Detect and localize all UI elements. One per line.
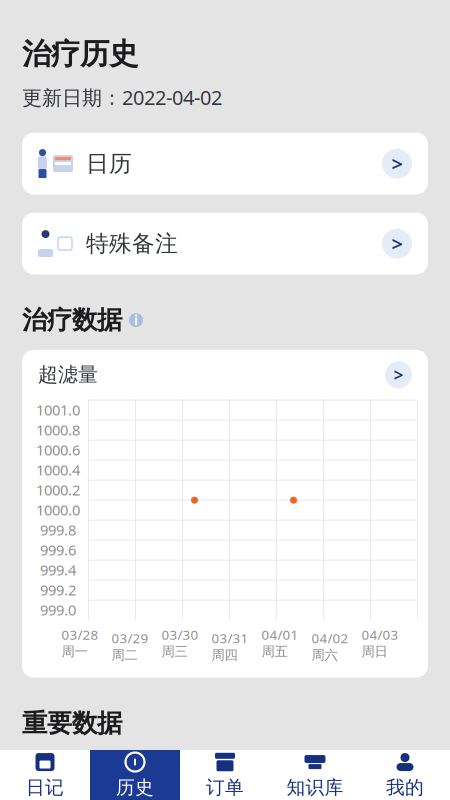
staticText: 超滤量 bbox=[38, 362, 98, 387]
staticText: > bbox=[393, 772, 403, 795]
staticText: 03/29 周二 bbox=[111, 629, 148, 663]
staticText: 999.6 bbox=[40, 540, 76, 559]
button[interactable]: 日历 bbox=[22, 133, 428, 195]
button[interactable]: 订单 bbox=[180, 750, 270, 800]
staticText: > bbox=[391, 150, 402, 177]
staticText: 我的 bbox=[386, 776, 424, 799]
staticText: 特殊备注 bbox=[86, 230, 178, 257]
button[interactable]: 我的 bbox=[360, 750, 450, 800]
button[interactable]: 知识库 bbox=[270, 750, 360, 800]
staticText: 1000.8 bbox=[36, 420, 80, 439]
staticText: 04/01 周五 bbox=[261, 626, 298, 660]
staticText: 999.0 bbox=[40, 600, 76, 619]
staticText: 999.8 bbox=[40, 520, 76, 539]
button[interactable]: 液体摄入量 bbox=[22, 753, 428, 800]
staticText: 03/28 周一 bbox=[61, 626, 98, 660]
button[interactable]: 历史 bbox=[90, 750, 180, 800]
staticText: > bbox=[393, 363, 403, 386]
staticText: 知识库 bbox=[286, 776, 343, 799]
staticText: 订单 bbox=[206, 776, 244, 799]
staticText: 999.4 bbox=[40, 560, 76, 579]
button[interactable]: 特殊备注 bbox=[22, 213, 428, 275]
staticText: 1000.2 bbox=[36, 480, 80, 499]
staticText: 04/02 周六 bbox=[311, 629, 348, 663]
staticText: 1001.0 bbox=[36, 400, 80, 419]
staticText: 历史 bbox=[116, 776, 154, 799]
button[interactable]: 超滤量 bbox=[22, 350, 428, 400]
staticText: > bbox=[391, 230, 402, 257]
staticText: i bbox=[134, 311, 138, 329]
staticText: 1000.4 bbox=[36, 460, 80, 479]
staticText: 1000.6 bbox=[36, 440, 80, 459]
staticText: 治疗历史 bbox=[22, 36, 138, 72]
staticText: 1000.0 bbox=[36, 500, 80, 519]
staticText: 日历 bbox=[86, 150, 132, 177]
staticText: 治疗数据 bbox=[22, 305, 122, 336]
staticText: 999.2 bbox=[40, 580, 76, 599]
staticText: 03/31 周四 bbox=[211, 629, 248, 663]
button[interactable]: 日记 bbox=[0, 750, 90, 800]
staticText: 重要数据 bbox=[22, 708, 122, 739]
staticText: 更新日期：2022-04-02 bbox=[22, 84, 222, 111]
staticText: 04/03 周日 bbox=[361, 626, 398, 660]
staticText: 日记 bbox=[26, 776, 64, 799]
staticText: 液体摄入量 bbox=[80, 771, 185, 797]
staticText: 03/30 周三 bbox=[161, 626, 198, 660]
